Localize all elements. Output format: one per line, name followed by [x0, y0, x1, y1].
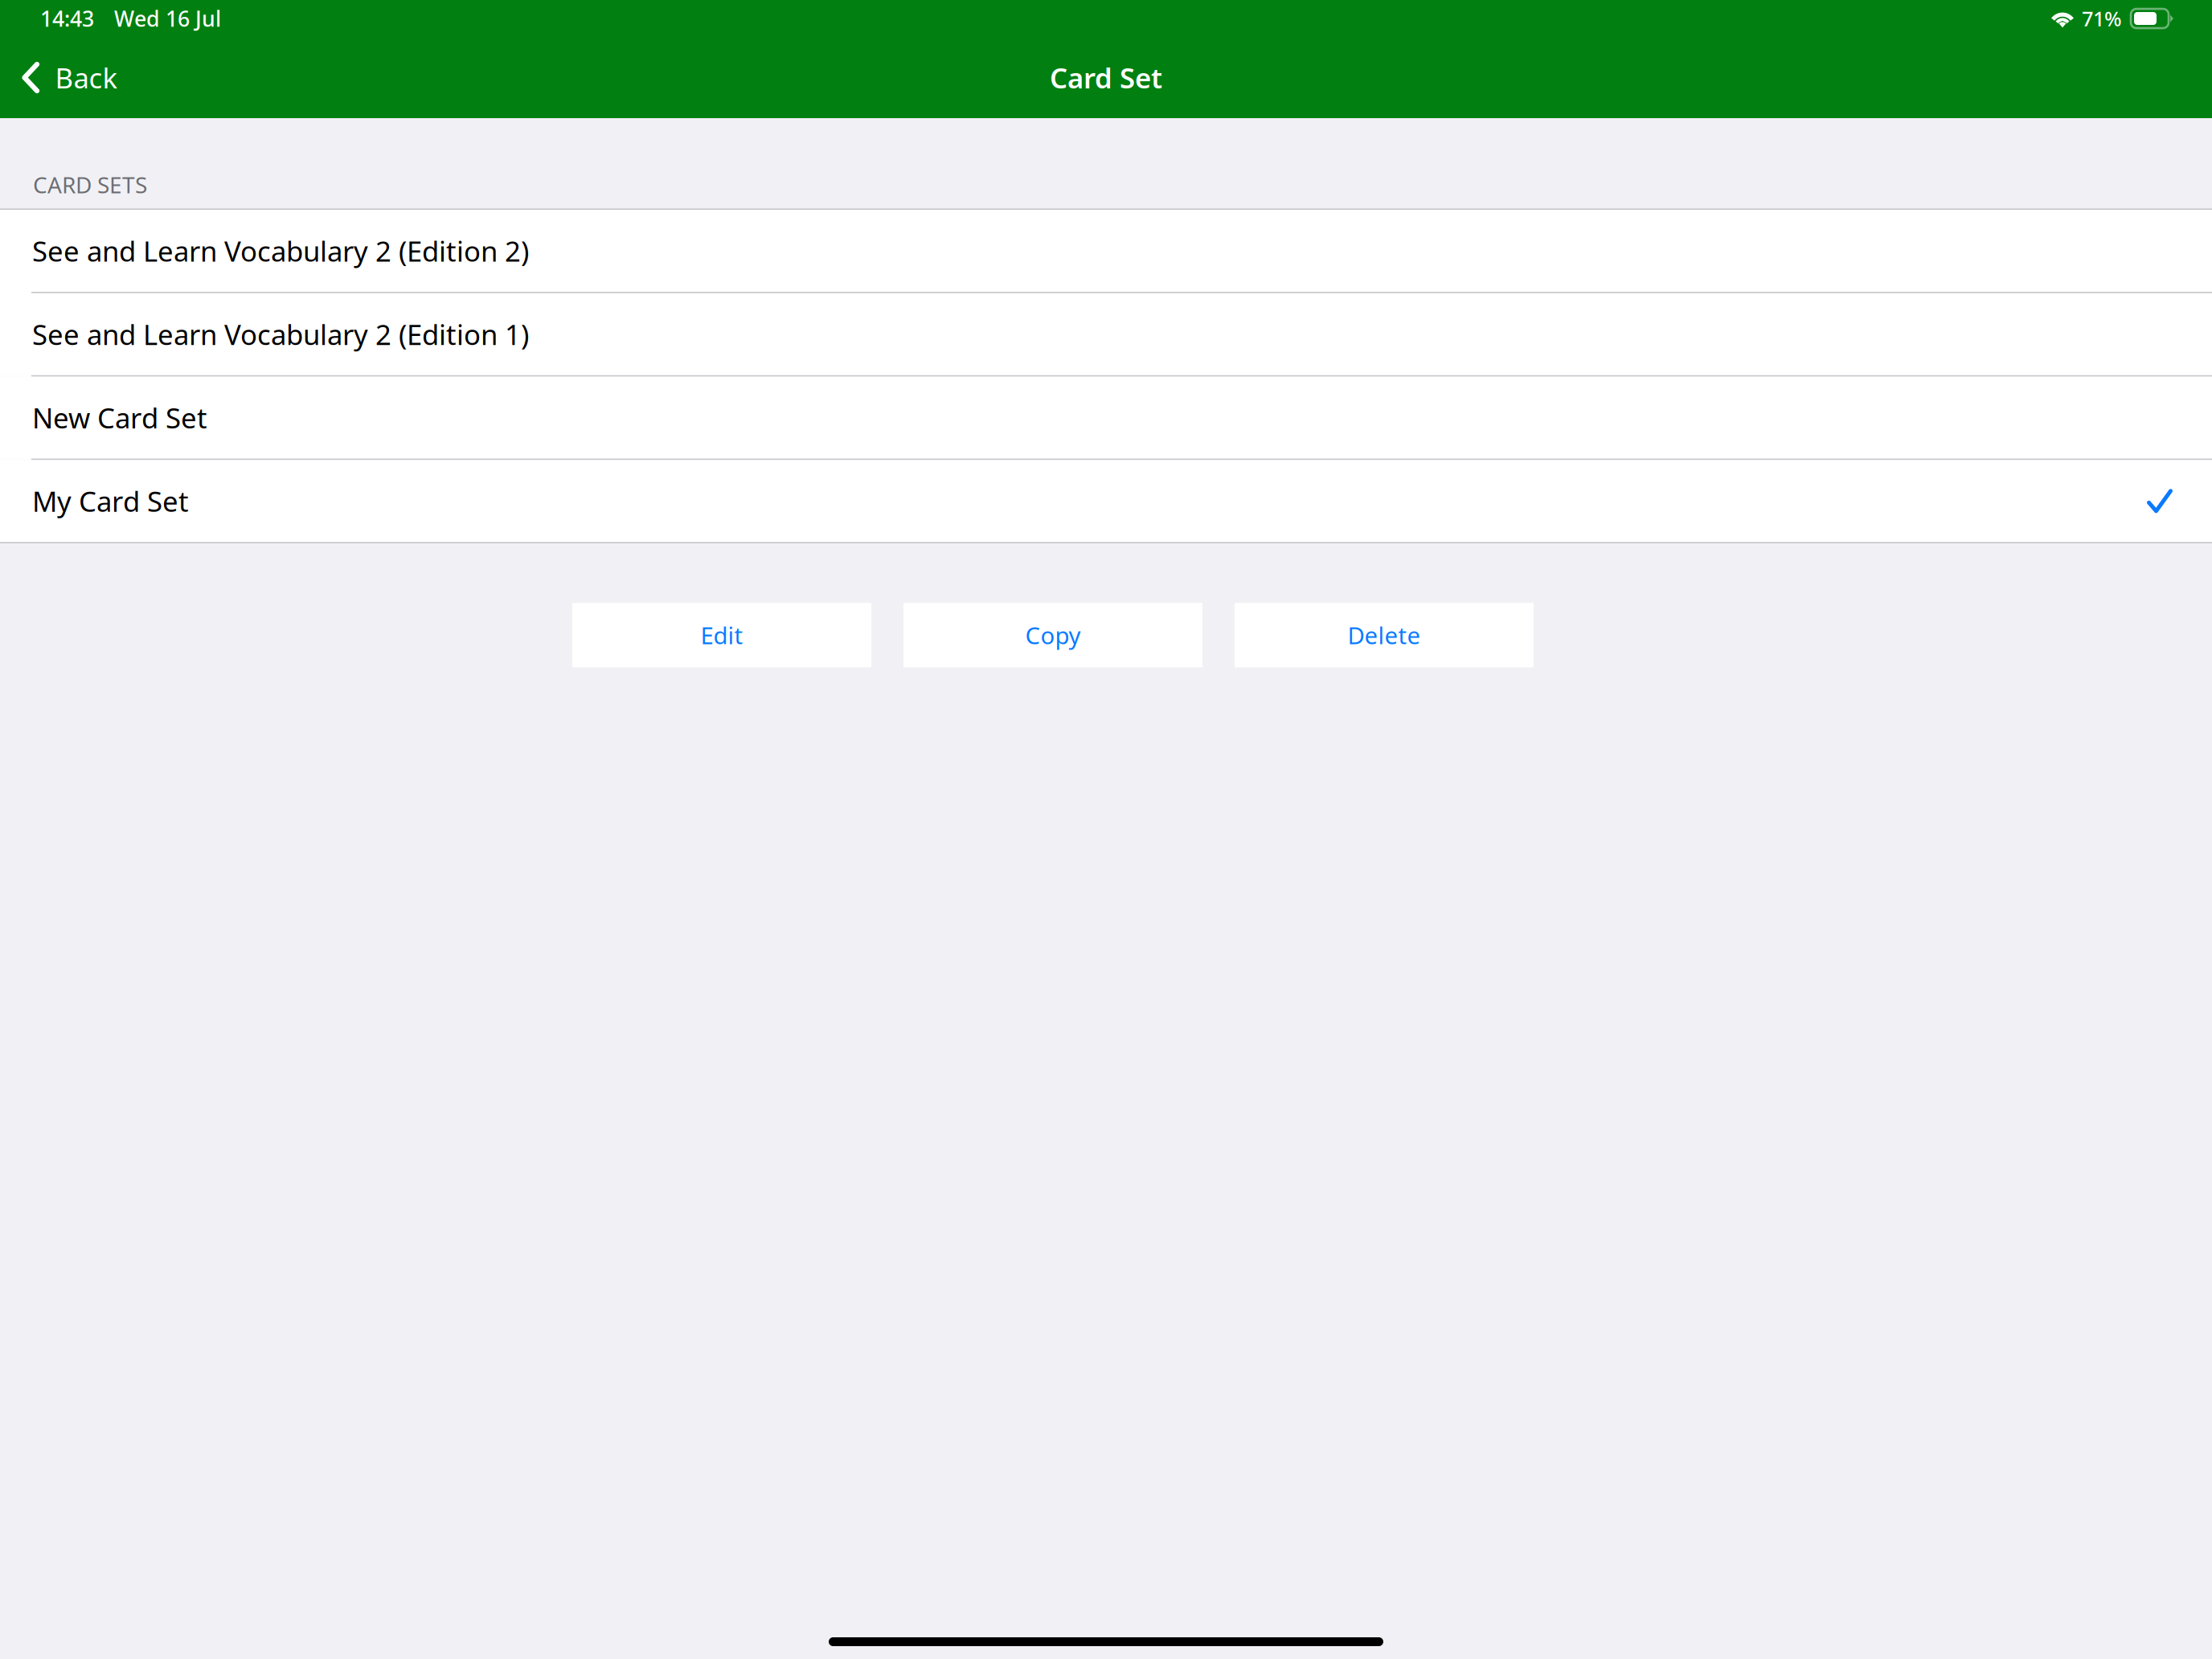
button[interactable]: Delete	[1235, 603, 1534, 667]
button[interactable]: See and Learn Vocabulary 2 (Edition 1)	[0, 293, 2212, 375]
staticText: Back	[55, 59, 118, 96]
button[interactable]: Copy	[903, 603, 1202, 667]
staticText: My Card Set	[32, 483, 189, 519]
staticText: See and Learn Vocabulary 2 (Edition 1)	[32, 316, 529, 353]
button[interactable]: Edit	[572, 603, 871, 667]
staticText: New Card Set	[32, 399, 207, 436]
staticText: See and Learn Vocabulary 2 (Edition 2)	[32, 232, 529, 269]
button[interactable]: My Card Set	[0, 460, 2212, 542]
staticText: Edit	[700, 619, 743, 651]
button[interactable]: See and Learn Vocabulary 2 (Edition 2)	[0, 210, 2212, 292]
staticText: Copy	[1025, 619, 1081, 651]
staticText: Card Set	[1050, 59, 1162, 96]
staticText: 71%	[2082, 5, 2122, 32]
button[interactable]: New Card Set	[0, 377, 2212, 459]
staticText: 14:43	[40, 4, 94, 33]
staticText: CARD SETS	[33, 170, 147, 199]
staticText: Delete	[1348, 619, 1421, 651]
button[interactable]: Back	[0, 47, 139, 108]
staticText: Wed 16 Jul	[114, 4, 221, 33]
